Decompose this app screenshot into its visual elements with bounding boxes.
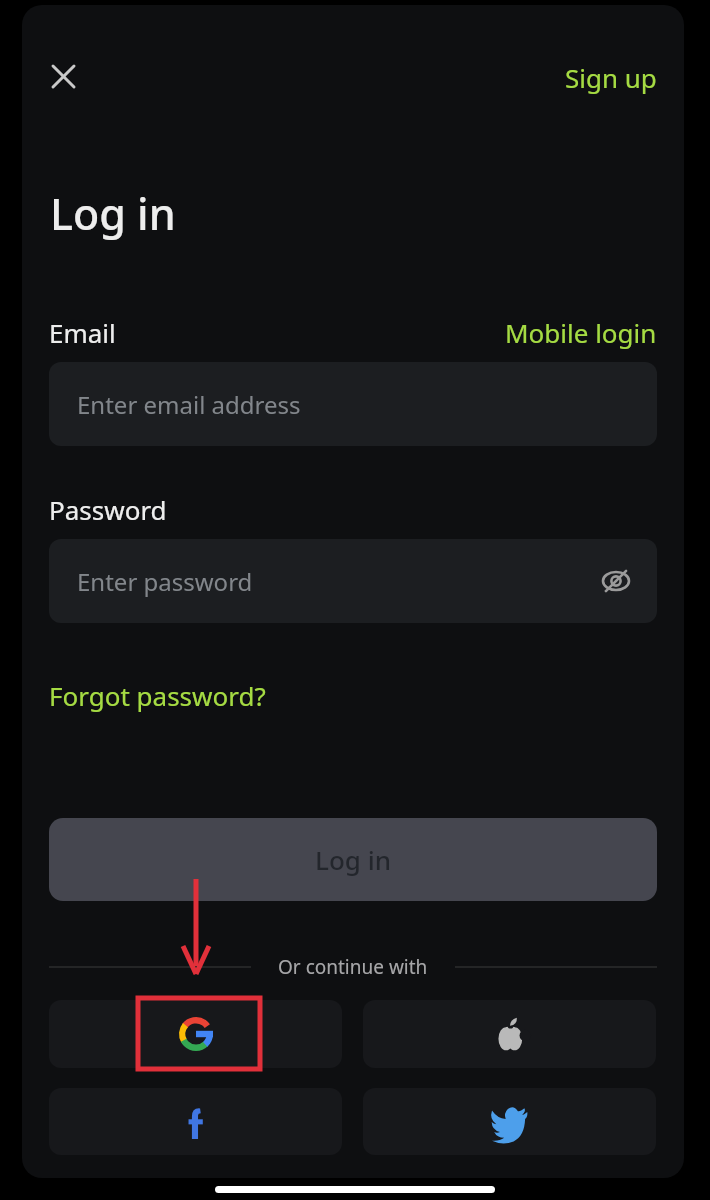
button[interactable] — [40, 53, 86, 99]
button[interactable]: Forgot password? — [49, 678, 266, 713]
button[interactable] — [49, 1088, 342, 1155]
staticText: Or continue with — [278, 954, 428, 980]
staticText: Mobile login — [505, 315, 657, 349]
staticText: Enter email address — [77, 388, 301, 421]
staticText: Log in — [315, 842, 391, 877]
button[interactable]: Enter password — [49, 539, 657, 623]
staticText: Password — [49, 492, 167, 527]
button[interactable]: Log in — [49, 818, 657, 901]
button[interactable]: Sign up — [537, 57, 657, 97]
staticText: Log in — [50, 184, 176, 243]
staticText: Email — [49, 315, 116, 350]
staticText: Forgot password? — [49, 678, 266, 713]
button[interactable] — [49, 1000, 342, 1068]
staticText: Enter password — [77, 565, 253, 598]
button[interactable] — [363, 1088, 656, 1155]
button[interactable] — [601, 566, 631, 596]
button[interactable]: Enter email address — [49, 362, 657, 446]
button[interactable] — [363, 1000, 656, 1068]
staticText: Sign up — [565, 60, 657, 95]
button[interactable]: Mobile login — [497, 315, 657, 349]
